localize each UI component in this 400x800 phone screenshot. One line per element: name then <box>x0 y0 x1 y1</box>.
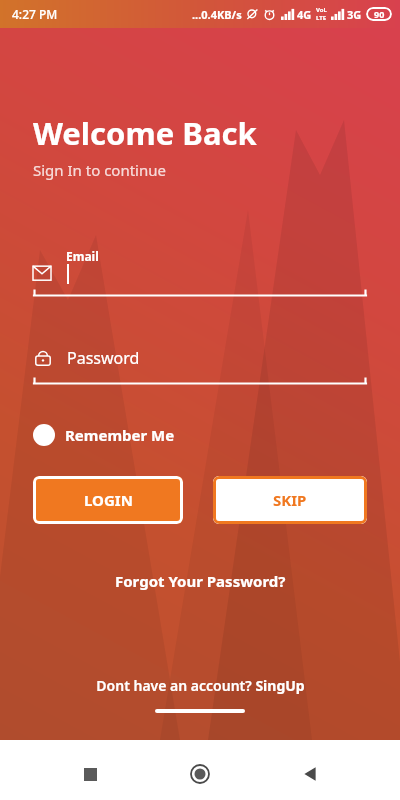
staticText: Email <box>66 248 99 264</box>
staticText: 4G <box>297 7 312 22</box>
button[interactable]: Recent apps <box>70 754 110 794</box>
button[interactable]: Back <box>290 754 330 794</box>
staticText: LTE <box>316 14 327 22</box>
staticText: SKIP <box>273 490 307 510</box>
button[interactable]: Password <box>33 338 367 386</box>
button[interactable]: Dont have an account? SingUp <box>90 670 311 701</box>
staticText: 4:27 PM <box>12 6 58 22</box>
staticText: VoL <box>316 6 327 14</box>
button[interactable]: LOGIN <box>33 476 183 524</box>
staticText: Welcome Back <box>33 112 257 154</box>
button[interactable]: Home <box>180 754 220 794</box>
button[interactable]: SKIP <box>213 476 367 524</box>
staticText: ...0.4KB/s <box>192 7 242 22</box>
staticText: 90 <box>374 8 385 20</box>
staticText: 3G <box>347 7 362 22</box>
staticText: LOGIN <box>84 490 133 510</box>
staticText: Password <box>67 347 140 369</box>
button[interactable]: Email <box>33 242 367 298</box>
button[interactable]: Forgot Your Password? <box>109 565 292 597</box>
button[interactable]: Remember Me <box>33 424 175 446</box>
staticText: Remember Me <box>65 425 175 445</box>
staticText: Sign In to continue <box>33 160 166 180</box>
